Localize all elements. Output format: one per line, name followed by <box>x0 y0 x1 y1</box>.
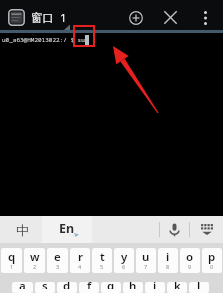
staticText: 1 <box>10 263 14 270</box>
button[interactable]: k <box>167 282 187 293</box>
staticText: u <box>142 249 150 265</box>
button[interactable]: t <box>92 248 112 273</box>
staticText: 4 <box>78 263 82 270</box>
staticText: h <box>129 282 137 289</box>
staticText: 6 <box>122 263 126 270</box>
button[interactable]: Voice input <box>160 216 189 243</box>
staticText: j <box>153 282 157 289</box>
staticText: u0_a63@HM2013022:/ $ su <box>2 36 85 44</box>
staticText: k <box>174 282 181 289</box>
staticText: l <box>197 282 201 289</box>
staticText: y <box>121 249 128 265</box>
button[interactable]: r <box>70 248 90 273</box>
staticText: En <box>59 220 75 237</box>
button[interactable]: d <box>57 282 77 293</box>
staticText: i <box>166 249 170 265</box>
button[interactable]: o <box>180 248 200 273</box>
staticText: 3 <box>56 263 60 270</box>
button[interactable]: More options <box>191 3 220 32</box>
button[interactable]: Terminal window <box>8 9 25 26</box>
button[interactable]: New window <box>121 3 150 32</box>
staticText: e <box>54 249 61 265</box>
button[interactable]: j <box>145 282 165 293</box>
button[interactable]: u <box>136 248 156 273</box>
staticText: 7 <box>144 263 148 270</box>
button[interactable]: y <box>114 248 134 273</box>
staticText: r <box>78 249 83 265</box>
button[interactable]: Keyboard layout <box>190 216 223 243</box>
staticText: 0 <box>210 263 214 270</box>
staticText: 8 <box>166 263 170 270</box>
staticText: s <box>42 282 48 289</box>
staticText: g <box>107 282 115 289</box>
staticText: 中 <box>16 222 29 238</box>
staticText: w <box>30 249 40 265</box>
button[interactable]: f <box>79 282 99 293</box>
staticText: 窗口 1 <box>31 10 67 26</box>
button[interactable]: q <box>1 248 22 273</box>
button[interactable]: 中 <box>0 216 42 243</box>
button[interactable]: Close window <box>156 3 185 32</box>
staticText: o <box>186 249 194 265</box>
staticText: a <box>19 282 26 289</box>
button[interactable]: En <box>42 216 92 243</box>
button[interactable]: a <box>12 282 33 293</box>
staticText: 9 <box>188 263 192 270</box>
button[interactable]: h <box>123 282 143 293</box>
button[interactable]: i <box>158 248 178 273</box>
staticText: f <box>87 282 92 289</box>
button[interactable]: g <box>101 282 121 293</box>
button[interactable]: l <box>189 282 209 293</box>
staticText: 5 <box>100 263 104 270</box>
button[interactable]: w <box>24 248 45 273</box>
button[interactable]: e <box>47 248 68 273</box>
staticText: 2 <box>33 263 37 270</box>
staticText: p <box>208 249 216 265</box>
staticText: t <box>100 249 105 265</box>
button[interactable]: s <box>35 282 55 293</box>
staticText: q <box>8 249 16 265</box>
button[interactable]: p <box>202 248 222 273</box>
staticText: d <box>63 282 71 289</box>
